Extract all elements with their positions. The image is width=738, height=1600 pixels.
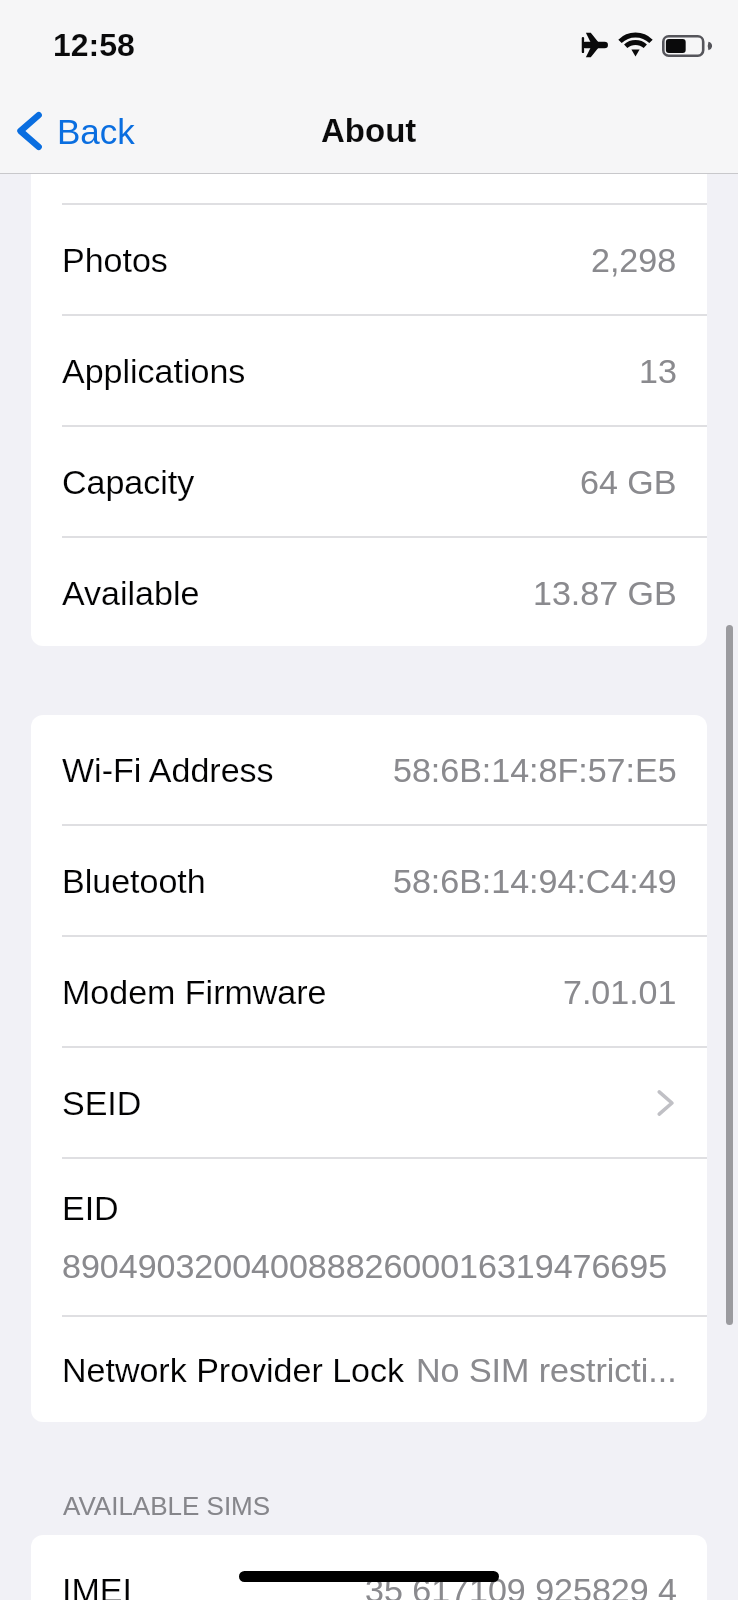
staticText: 13.87 GB	[533, 574, 677, 612]
button[interactable]: Capacity	[31, 425, 707, 536]
staticText: EID	[62, 1189, 119, 1227]
staticText: AVAILABLE SIMS	[63, 1491, 271, 1520]
button[interactable]: IMEI	[31, 1535, 707, 1600]
staticText: Bluetooth	[62, 862, 206, 900]
button[interactable]: Photos	[31, 203, 707, 314]
staticText: Back	[57, 112, 135, 151]
button[interactable]: Back	[0, 103, 153, 159]
button[interactable]: SEID	[31, 1046, 707, 1157]
button[interactable]: Modem Firmware	[31, 935, 707, 1046]
staticText: Modem Firmware	[62, 973, 327, 1011]
staticText: 58:6B:14:8F:57:E5	[393, 751, 677, 789]
staticText: Wi-Fi Address	[62, 751, 274, 789]
button[interactable]: Wi-Fi Address	[31, 715, 707, 824]
staticText: IMEI	[62, 1571, 132, 1600]
staticText: Applications	[62, 352, 246, 390]
staticText: SEID	[62, 1084, 142, 1122]
staticText: Network Provider Lock	[62, 1351, 405, 1389]
staticText: 35 617109 925829 4	[365, 1571, 677, 1600]
button[interactable]: Bluetooth	[31, 824, 707, 935]
staticText: About	[321, 112, 417, 149]
staticText: 64 GB	[580, 463, 677, 501]
staticText: 7.01.01	[563, 973, 677, 1011]
staticText: 12:58	[53, 27, 135, 63]
other: Airplane mode	[580, 32, 608, 58]
other: Battery 47 percent	[662, 34, 711, 58]
other: Wi-Fi	[620, 32, 651, 57]
staticText: 13	[639, 352, 677, 390]
button[interactable]: Available	[31, 536, 707, 646]
button[interactable]: EID	[31, 1157, 707, 1315]
staticText: 2,298	[591, 241, 677, 279]
staticText: 89049032004008882600016319476695	[62, 1247, 668, 1285]
staticText: Capacity	[62, 463, 195, 501]
staticText: Photos	[62, 241, 168, 279]
button[interactable]: Applications	[31, 314, 707, 425]
button[interactable]: Network Provider Lock	[31, 1315, 707, 1422]
staticText: 58:6B:14:94:C4:49	[393, 862, 677, 900]
staticText: No SIM restricti...	[416, 1351, 677, 1389]
staticText: Available	[62, 574, 200, 612]
